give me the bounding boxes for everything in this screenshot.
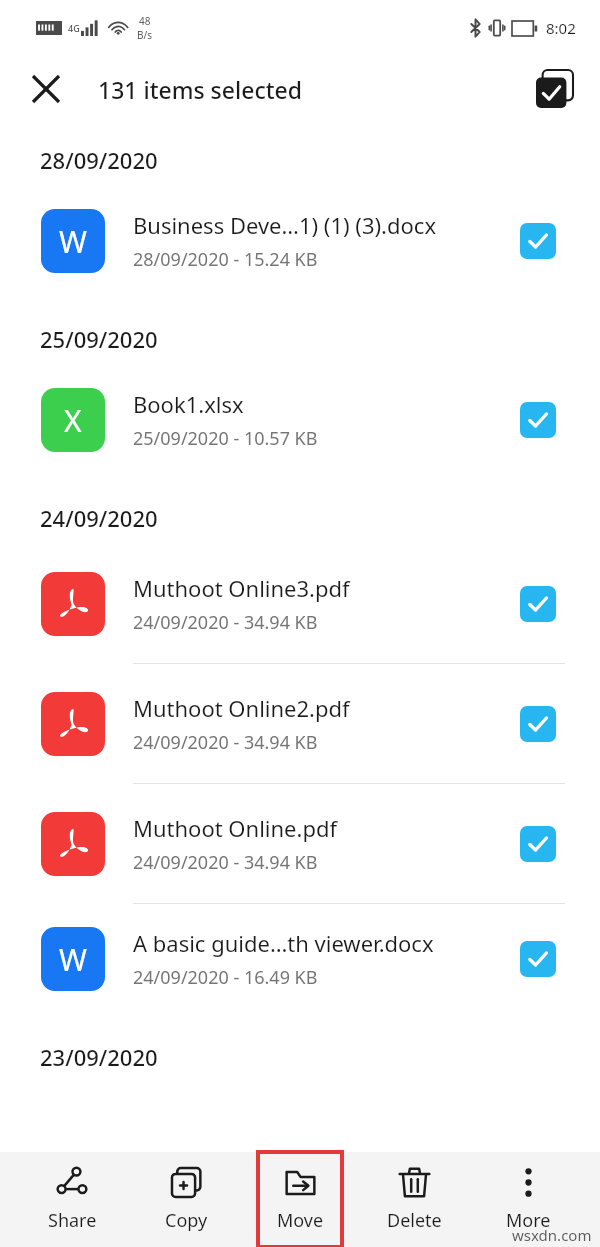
staticText: Copy	[165, 1208, 208, 1233]
staticText: Delete	[387, 1208, 442, 1233]
button[interactable]: More	[486, 1152, 570, 1247]
staticText: Book1.xlsx	[133, 389, 244, 419]
staticText: 28/09/2020 - 15.24 KB	[133, 247, 318, 272]
staticText: B/s	[137, 28, 153, 42]
staticText: 23/09/2020	[40, 1042, 158, 1072]
staticText: 24/09/2020 - 34.94 KB	[133, 850, 318, 875]
staticText: More	[506, 1208, 551, 1233]
staticText: W	[59, 939, 87, 980]
staticText: 4G	[68, 22, 80, 34]
staticText: A basic guide…th viewer.docx	[133, 928, 434, 958]
staticText: Muthoot Online.pdf	[133, 813, 338, 843]
button[interactable]: Delete	[372, 1152, 456, 1247]
staticText: Business Deve…1) (1) (3).docx	[133, 210, 437, 240]
button[interactable]: Selected	[516, 702, 560, 746]
staticText: 24/09/2020 - 16.49 KB	[133, 965, 318, 990]
button[interactable]: Selected	[516, 398, 560, 442]
staticText: 24/09/2020	[40, 503, 158, 533]
button[interactable]: Move	[258, 1152, 342, 1247]
staticText: 24/09/2020 - 34.94 KB	[133, 610, 318, 635]
button[interactable]: X	[0, 365, 600, 475]
button[interactable]: Muthoot Online3.pdf	[0, 544, 600, 664]
staticText: 28/09/2020	[40, 145, 158, 175]
button[interactable]: Muthoot Online2.pdf	[0, 664, 600, 784]
button[interactable]: Close	[20, 63, 72, 115]
button[interactable]: W	[0, 186, 600, 296]
staticText: 25/09/2020 - 10.57 KB	[133, 426, 318, 451]
staticText: 25/09/2020	[40, 324, 158, 354]
button[interactable]: Muthoot Online.pdf	[0, 784, 600, 904]
button[interactable]: Selected	[516, 582, 560, 626]
staticText: 131 items selected	[98, 74, 302, 105]
staticText: Muthoot Online3.pdf	[133, 573, 350, 603]
staticText: Move	[277, 1208, 324, 1233]
staticText: Share	[48, 1208, 97, 1233]
button[interactable]: Share	[30, 1152, 114, 1247]
staticText: 48	[139, 14, 151, 28]
button[interactable]: Copy	[144, 1152, 228, 1247]
staticText: 8:02	[546, 18, 576, 38]
button[interactable]: Select all	[528, 62, 582, 116]
staticText: X	[64, 400, 82, 441]
button[interactable]: Selected	[516, 219, 560, 263]
button[interactable]: W	[0, 904, 600, 1014]
button[interactable]: Selected	[516, 937, 560, 981]
staticText: W	[59, 221, 87, 262]
staticText: 24/09/2020 - 34.94 KB	[133, 730, 318, 755]
staticText: wsxdn.com	[512, 1225, 592, 1245]
staticText: Muthoot Online2.pdf	[133, 693, 350, 723]
button[interactable]: Selected	[516, 822, 560, 866]
